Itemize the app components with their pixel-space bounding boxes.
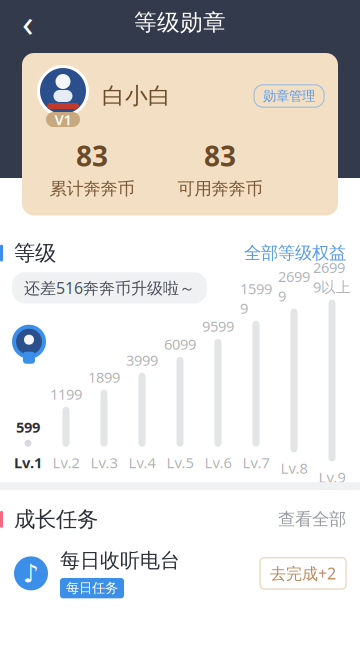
button[interactable]: 查看全部 [278,509,360,530]
staticText: 全部等级权益 [244,242,346,264]
staticText: 成长任务 [14,506,98,532]
button[interactable]: 全部等级权益 [244,242,360,264]
staticText: ♪ [23,559,39,588]
button[interactable]: 勋章管理 [254,85,324,107]
staticText: 白小白 [102,82,171,110]
staticText: 勋章管理 [263,88,315,104]
staticText: 等级 [14,240,56,266]
staticText: Lv.3 [90,453,117,472]
staticText: 可用奔奔币 [177,178,262,199]
staticText: 26999以上 [313,257,351,296]
staticText: Lv.5 [166,453,193,472]
staticText: 599 [16,417,40,437]
staticText: Lv.9 [318,467,345,487]
staticText: 3999 [126,350,158,370]
staticText: Lv.1 [14,453,42,472]
button[interactable]: ♪ [0,532,360,612]
staticText: ‹ [22,0,34,47]
staticText: 15999 [240,279,272,318]
staticText: Lv.8 [280,458,307,478]
staticText: V1 [54,110,71,129]
button[interactable]: Back [6,1,50,43]
staticText: 6099 [164,334,196,354]
staticText: 每日收听电台 [60,548,180,573]
staticText: 83 [76,137,108,174]
staticText: 去完成+2 [270,563,336,584]
staticText: 83 [204,137,236,174]
staticText: 累计奔奔币 [49,178,134,199]
staticText: Lv.6 [204,453,231,472]
staticText: 还差516奔奔币升级啦～ [24,277,195,298]
staticText: 1199 [50,384,82,404]
staticText: 查看全部 [278,509,346,530]
staticText: Lv.7 [242,453,269,472]
staticText: 每日任务 [66,580,118,596]
staticText: 26999 [278,266,310,305]
staticText: 9599 [202,316,234,336]
staticText: 等级勋章 [134,9,226,36]
staticText: 1899 [88,367,120,387]
staticText: Lv.2 [52,453,79,472]
staticText: Lv.4 [128,453,155,472]
